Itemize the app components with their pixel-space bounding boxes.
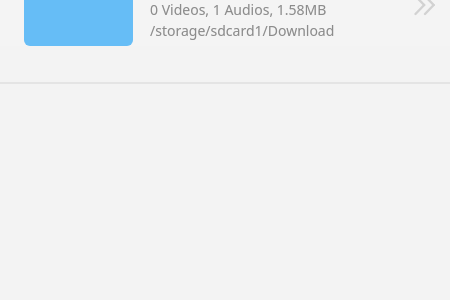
button[interactable]: Open folder — [401, 0, 449, 29]
button[interactable]: Download — [0, 0, 450, 46]
staticText: 0 Videos, 1 Audios, 1.58MB — [150, 0, 327, 19]
staticText: /storage/sdcard1/Download — [150, 21, 335, 40]
